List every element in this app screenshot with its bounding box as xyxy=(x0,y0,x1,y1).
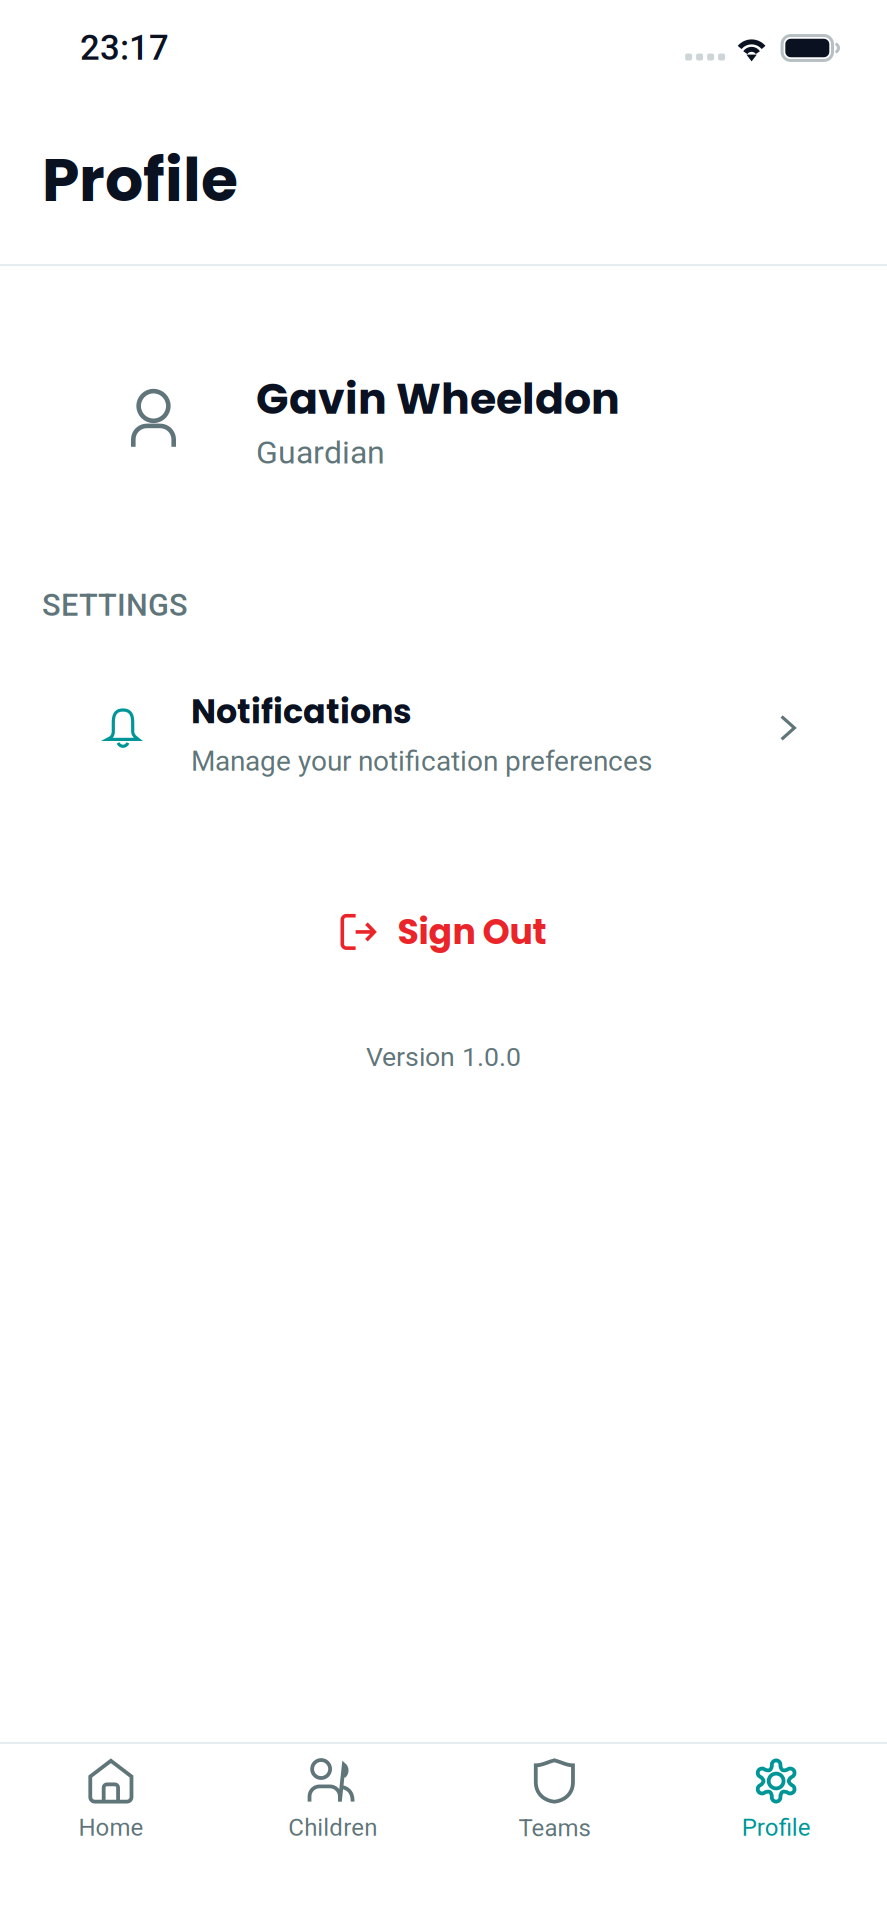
staticText: 23:17 xyxy=(80,28,169,68)
button[interactable]: Home xyxy=(0,1754,222,1846)
button[interactable]: Notifications xyxy=(0,670,887,796)
staticText: Sign Out xyxy=(397,908,546,956)
staticText: SETTINGS xyxy=(42,587,188,623)
staticText: Teams xyxy=(518,1814,590,1842)
staticText: Profile xyxy=(42,138,238,222)
button[interactable]: Teams xyxy=(443,1754,665,1846)
staticText: Version 1.0.0 xyxy=(366,1041,521,1072)
staticText: Manage your notification preferences xyxy=(191,745,652,778)
button[interactable]: Children xyxy=(222,1754,444,1846)
button[interactable]: Profile xyxy=(665,1754,887,1846)
staticText: Guardian xyxy=(256,434,385,471)
staticText: Profile xyxy=(742,1813,811,1842)
staticText: Gavin Wheeldon xyxy=(256,369,620,429)
button[interactable]: Sign Out xyxy=(314,892,572,972)
staticText: Children xyxy=(288,1813,377,1842)
staticText: Notifications xyxy=(191,688,412,735)
staticText: Home xyxy=(78,1813,143,1842)
